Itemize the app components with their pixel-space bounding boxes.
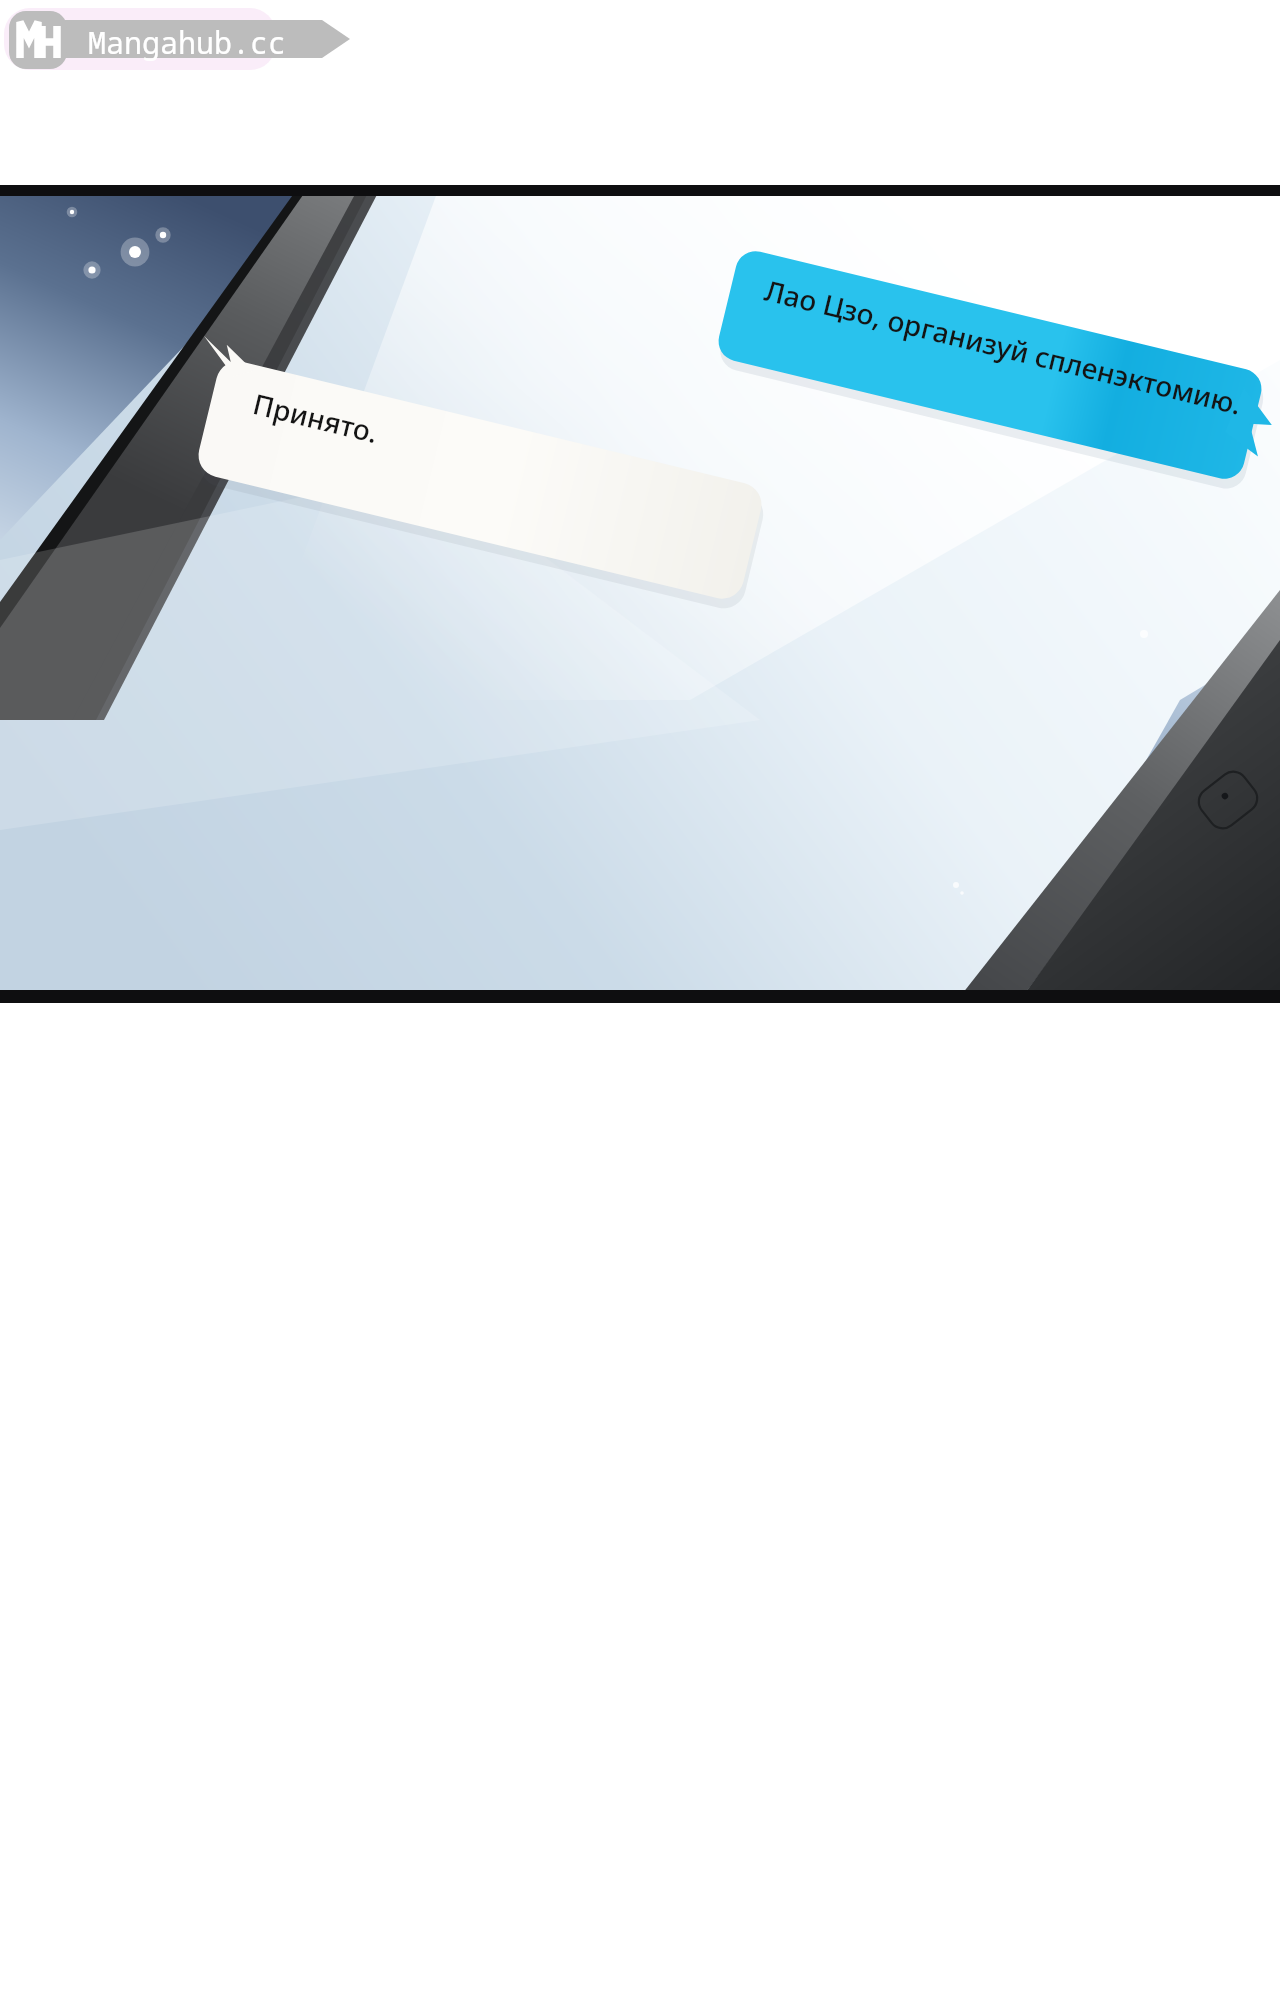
button[interactable]: Manga page [0,0,1280,2000]
